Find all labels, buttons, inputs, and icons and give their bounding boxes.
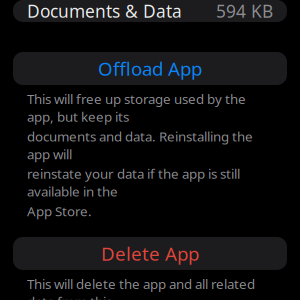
button[interactable]: Delete App: [13, 237, 287, 270]
staticText: reinstate your data if the app is still …: [27, 165, 240, 200]
staticText: This will free up storage used by the ap…: [27, 90, 246, 125]
staticText: Offload App: [98, 56, 202, 81]
staticText: documents and data. Reinstalling the app…: [27, 127, 253, 163]
staticText: Delete App: [101, 241, 199, 266]
staticText: Documents & Data: [27, 0, 182, 22]
button[interactable]: Offload App: [13, 52, 287, 85]
button[interactable]: Documents & Data: [13, 0, 287, 22]
staticText: App Store.: [27, 202, 92, 220]
staticText: 594 KB: [216, 0, 273, 22]
staticText: This will delete the app and all related…: [27, 275, 255, 300]
